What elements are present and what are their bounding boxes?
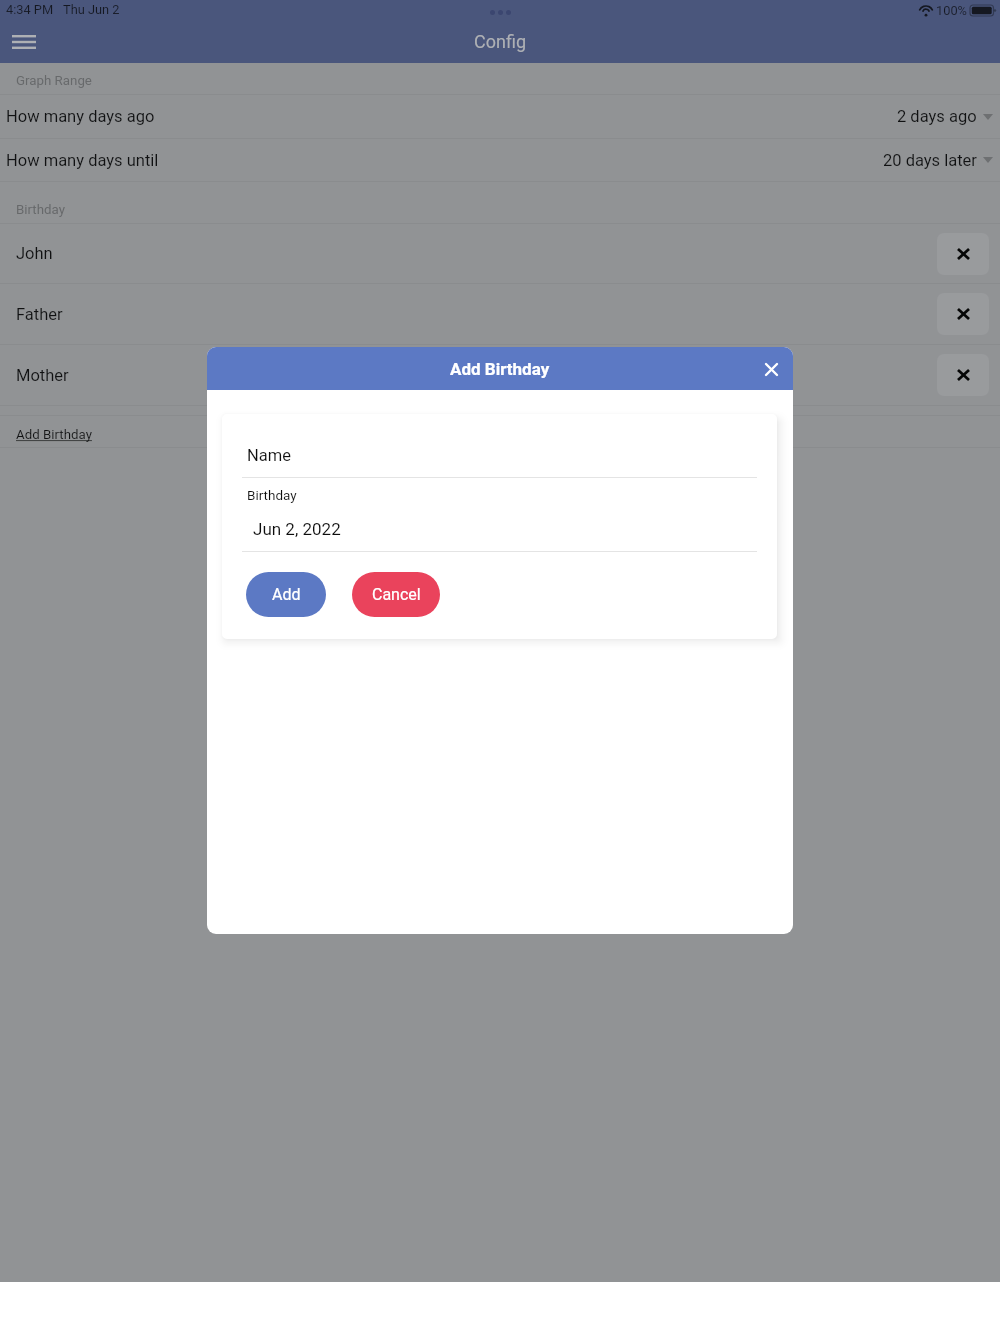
staticText: 20 days later (883, 151, 977, 170)
button[interactable]: Menu (0, 21, 48, 62)
button[interactable]: Close (752, 350, 790, 388)
button[interactable]: Cancel (352, 572, 440, 617)
button[interactable]: Father (0, 284, 937, 344)
staticText: Name (247, 446, 291, 465)
staticText: John (16, 244, 53, 263)
button[interactable]: Remove Mother (937, 354, 989, 396)
staticText: Thu Jun 2 (63, 2, 120, 17)
staticText: How many days ago (6, 107, 155, 126)
staticText: Add Birthday (450, 359, 550, 379)
staticText: 100% (936, 3, 967, 18)
button[interactable]: Add Birthday (16, 424, 92, 440)
button[interactable]: Remove John (937, 233, 989, 275)
staticText: Add (272, 585, 301, 604)
button[interactable]: John (0, 224, 937, 283)
staticText: Add Birthday (16, 427, 92, 443)
staticText: 2 days ago (897, 107, 977, 126)
button[interactable]: Birthday (222, 478, 777, 551)
button[interactable]: Remove Father (937, 293, 989, 335)
staticText: 4:34 PM (6, 2, 54, 17)
staticText: Config (474, 31, 527, 52)
staticText: Birthday (247, 487, 297, 503)
button[interactable]: Add (246, 572, 326, 617)
button[interactable]: Mother (0, 345, 937, 405)
staticText: Jun 2, 2022 (253, 519, 341, 539)
staticText: How many days until (6, 151, 159, 170)
button[interactable]: How many days ago (0, 95, 1000, 138)
staticText: Mother (16, 366, 69, 385)
staticText: Cancel (372, 585, 421, 604)
staticText: Father (16, 305, 63, 324)
button[interactable]: How many days until (0, 139, 1000, 181)
staticText: Birthday (16, 202, 65, 218)
staticText: Graph Range (16, 73, 92, 89)
button[interactable]: Name (222, 414, 777, 477)
